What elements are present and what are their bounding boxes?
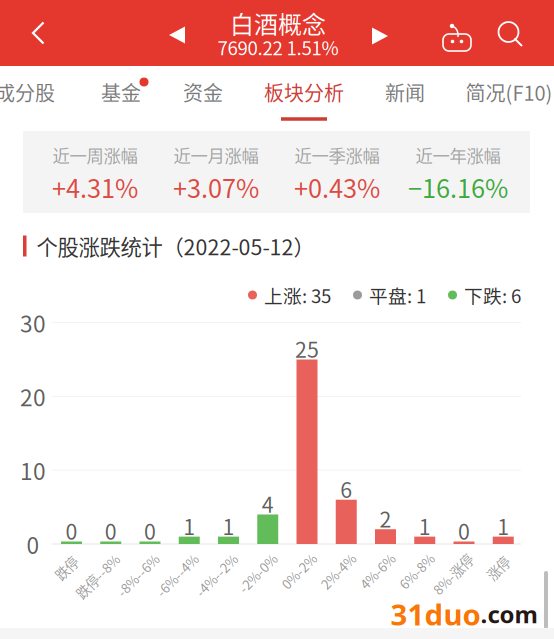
- staticText: 1: [419, 510, 431, 541]
- staticText: 上涨: 35: [264, 281, 331, 308]
- staticText: 资金: [183, 77, 223, 106]
- staticText: -8%--6%: [111, 565, 164, 585]
- staticText: +0.43%: [294, 169, 380, 205]
- button[interactable]: Previous: [157, 13, 197, 57]
- staticText: 近一周涨幅: [52, 142, 137, 168]
- staticText: 0: [65, 515, 77, 546]
- staticText: 涨停: [485, 558, 511, 578]
- staticText: -2%-0%: [234, 563, 282, 583]
- button[interactable]: 资金: [155, 66, 251, 124]
- staticText: 近一年涨幅: [415, 142, 500, 168]
- staticText: 30: [20, 306, 46, 339]
- staticText: 板块分析: [264, 77, 344, 106]
- staticText: 0%-2%: [277, 561, 320, 581]
- staticText: 2%-4%: [317, 561, 360, 581]
- staticText: 成分股: [0, 77, 55, 106]
- staticText: 0: [26, 528, 39, 560]
- button[interactable]: 简况(F10): [461, 66, 554, 124]
- staticText: 跌停--8%: [70, 566, 125, 586]
- staticText: 1: [497, 510, 509, 541]
- staticText: −16.16%: [408, 169, 508, 205]
- staticText: 基金: [101, 77, 141, 106]
- staticText: 新闻: [385, 77, 425, 106]
- staticText: 0: [144, 515, 156, 546]
- staticText: -6%--4%: [151, 565, 204, 585]
- staticText: 1: [222, 510, 234, 541]
- staticText: -4%--2%: [190, 565, 243, 585]
- staticText: 7690.22 1.51%: [217, 33, 338, 60]
- button[interactable]: 成分股: [0, 66, 73, 124]
- staticText: +4.31%: [52, 169, 138, 205]
- button[interactable]: Assistant: [435, 13, 479, 61]
- staticText: 平盘: 1: [369, 281, 426, 308]
- staticText: 白酒概念: [230, 6, 326, 40]
- staticText: 8%-涨停: [428, 564, 478, 584]
- button[interactable]: 新闻: [357, 66, 453, 124]
- staticText: 31duo: [390, 594, 480, 634]
- staticText: 25: [295, 333, 319, 364]
- staticText: 6: [340, 473, 352, 504]
- staticText: 2: [379, 503, 391, 534]
- staticText: 4%-6%: [356, 561, 399, 581]
- staticText: .com: [480, 598, 537, 630]
- staticText: 0: [105, 515, 117, 546]
- staticText: 个股涨跌统计（2022-05-12）: [36, 231, 314, 261]
- staticText: 0: [458, 515, 470, 546]
- staticText: 跌停: [53, 558, 79, 578]
- staticText: 1: [183, 510, 195, 541]
- staticText: 简况(F10): [465, 77, 552, 106]
- staticText: 近一月涨幅: [173, 142, 258, 168]
- staticText: 20: [20, 380, 46, 413]
- button[interactable]: Next: [360, 14, 400, 58]
- button[interactable]: Search: [489, 11, 533, 59]
- button[interactable]: Back: [12, 7, 64, 59]
- button[interactable]: 基金: [73, 66, 169, 124]
- staticText: 近一季涨幅: [294, 142, 379, 168]
- staticText: 6%-8%: [395, 561, 438, 581]
- staticText: 4: [262, 488, 274, 519]
- staticText: +3.07%: [173, 169, 259, 205]
- button[interactable]: 板块分析: [256, 66, 352, 124]
- staticText: 10: [20, 454, 46, 487]
- staticText: 下跌: 6: [464, 281, 521, 308]
